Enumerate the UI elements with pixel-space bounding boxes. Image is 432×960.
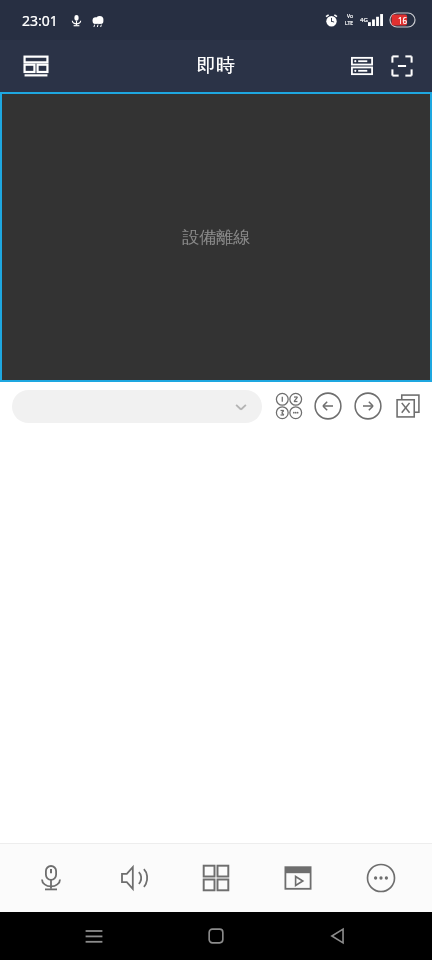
staticText: 16 [398, 15, 408, 26]
button[interactable]: Layout [14, 44, 58, 88]
button[interactable]: Next [350, 388, 386, 424]
button[interactable]: Select channel [12, 390, 262, 423]
staticText: LTE [345, 20, 354, 27]
button[interactable]: Grid [185, 848, 247, 908]
staticText: Vo [347, 13, 353, 20]
button[interactable]: Playback [267, 848, 329, 908]
staticText: 設備離線 [182, 227, 250, 248]
button[interactable]: Channel grid [272, 389, 306, 423]
button[interactable]: Back [310, 912, 366, 960]
button[interactable]: Home [188, 912, 244, 960]
button[interactable]: 設備離線 [2, 94, 430, 380]
button[interactable]: Close all [390, 388, 426, 424]
staticText: 即時 [197, 54, 235, 78]
button[interactable]: Microphone [20, 848, 82, 908]
button[interactable]: Recents [66, 912, 122, 960]
button[interactable]: More [350, 848, 412, 908]
button[interactable]: Speaker [103, 848, 165, 908]
staticText: 23:01 [22, 11, 58, 30]
staticText: 4G [360, 16, 368, 24]
button[interactable]: Fullscreen [382, 46, 422, 86]
button[interactable]: List view [342, 46, 382, 86]
button[interactable]: Previous [310, 388, 346, 424]
